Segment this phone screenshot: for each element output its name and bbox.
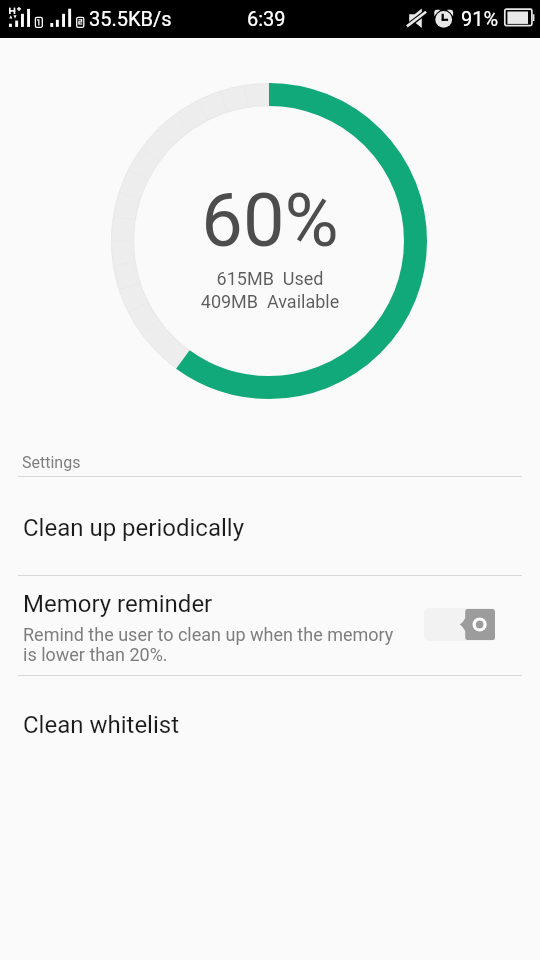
button[interactable]: Memory reminder switch, off [424,608,495,641]
staticText: Settings [22,453,81,472]
staticText: 6:39 [247,7,286,30]
button[interactable]: Clean whitelist [0,676,540,774]
button[interactable]: Memory reminder [0,576,540,675]
staticText: 615MB Used [0,268,540,289]
staticText: 91% [461,7,499,30]
staticText: 409MB Available [0,291,540,312]
staticText: Clean whitelist [23,711,180,739]
staticText: Clean up periodically [23,514,244,542]
staticText: Memory reminder [23,590,213,618]
staticText: 35.5KB/s [89,7,172,30]
button[interactable]: Clean up periodically [0,477,540,575]
staticText: Remind the user to clean up when the mem… [23,624,394,645]
staticText: 60% [0,177,540,264]
staticText: is lower than 20%. [23,644,168,665]
